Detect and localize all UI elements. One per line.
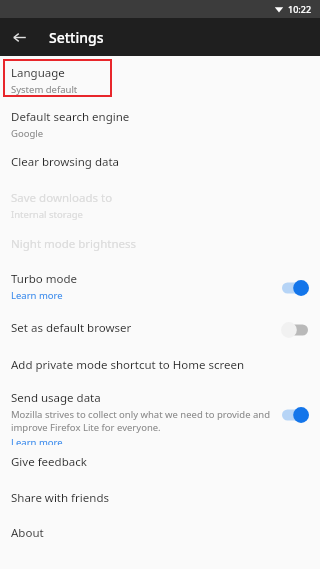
staticText: Default search engine: [11, 109, 130, 125]
staticText: Language: [11, 65, 65, 81]
button[interactable]: Default search engine: [0, 100, 320, 145]
button[interactable]: Toggle on: [280, 406, 310, 424]
staticText: Send usage data: [11, 390, 101, 406]
staticText: Save downloads to: [11, 190, 113, 206]
button[interactable]: Back: [0, 18, 38, 56]
staticText: Internal storage: [11, 208, 83, 221]
button[interactable]: Language: [0, 56, 320, 100]
button[interactable]: Toggle on: [280, 279, 310, 297]
staticText: Turbo mode: [11, 271, 77, 287]
staticText: Night mode brightness: [11, 236, 137, 252]
staticText: Give feedback: [11, 454, 87, 470]
staticText: 10:22: [288, 3, 312, 15]
staticText: Set as default browser: [11, 320, 132, 336]
staticText: Share with friends: [11, 490, 109, 506]
button[interactable]: Add private mode shortcut to Home screen: [0, 348, 320, 384]
staticText: Google: [11, 127, 44, 140]
staticText: Clear browsing data: [11, 154, 120, 170]
staticText: Mozilla strives to collect only what we …: [11, 408, 276, 434]
button[interactable]: Toggle off: [280, 321, 310, 339]
button[interactable]: Give feedback: [0, 445, 320, 481]
button[interactable]: About: [0, 516, 320, 546]
staticText: Settings: [49, 28, 104, 47]
button[interactable]: Share with friends: [0, 481, 320, 516]
button[interactable]: Turbo mode: [0, 265, 320, 311]
button[interactable]: Learn more: [11, 289, 63, 302]
staticText: About: [11, 525, 44, 541]
button[interactable]: Set as default browser: [0, 311, 320, 348]
staticText: Add private mode shortcut to Home screen: [11, 357, 245, 373]
button[interactable]: Send usage data: [0, 384, 320, 445]
button[interactable]: Clear browsing data: [0, 145, 320, 181]
button[interactable]: Learn more: [11, 436, 63, 445]
button[interactable]: Save downloads to: [0, 181, 320, 227]
staticText: System default: [11, 83, 78, 96]
button[interactable]: Night mode brightness: [0, 227, 320, 265]
